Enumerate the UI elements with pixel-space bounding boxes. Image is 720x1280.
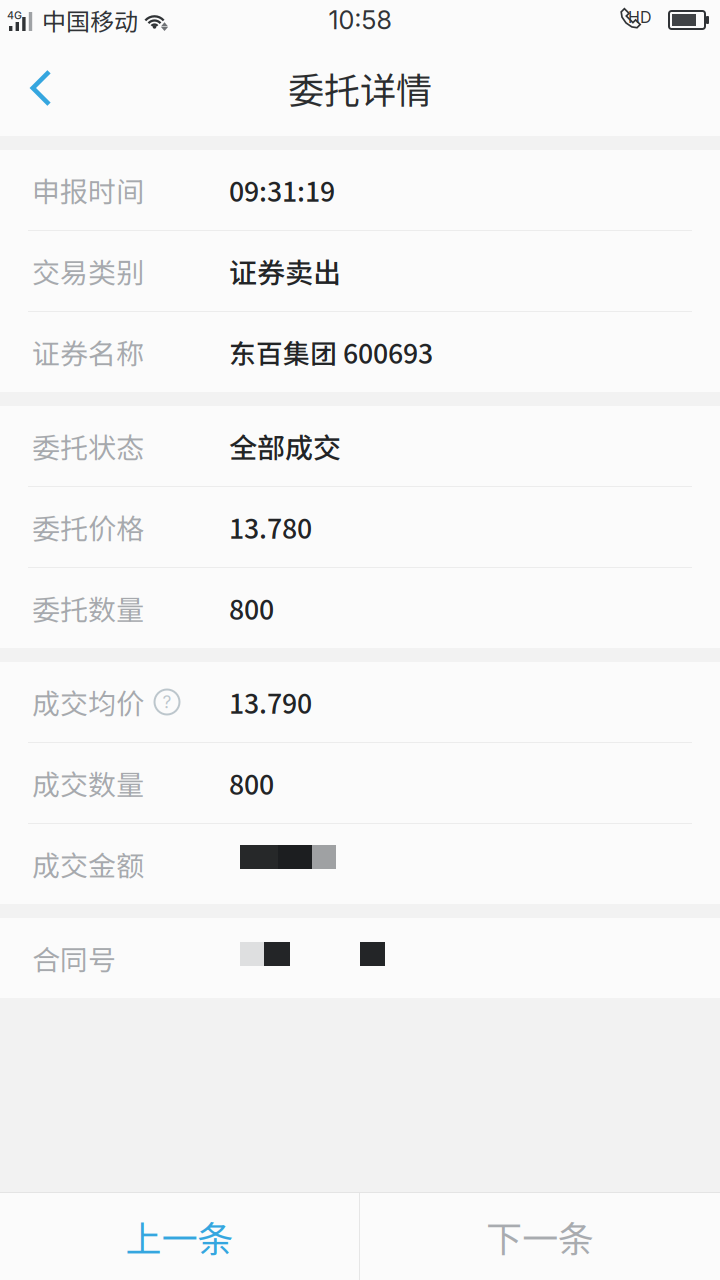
staticText: 委托价格: [32, 507, 144, 547]
button[interactable]: 下一条: [360, 1193, 720, 1280]
staticText: 成交均价: [32, 682, 144, 722]
staticText: 4G: [7, 9, 22, 22]
staticText: 交易类别: [32, 251, 144, 291]
staticText: 13.790: [229, 683, 312, 721]
staticText: 委托状态: [32, 426, 144, 466]
staticText: 证券名称: [32, 332, 144, 372]
staticText: 中国移动: [42, 3, 138, 37]
staticText: 10:58: [328, 5, 391, 35]
staticText: 上一条: [125, 1210, 233, 1262]
button[interactable]: 上一条: [0, 1193, 359, 1280]
staticText: 证券卖出: [229, 251, 341, 291]
staticText: 800: [229, 764, 274, 802]
staticText: 东百集团 600693: [229, 333, 433, 371]
staticText: 800: [229, 589, 274, 627]
staticText: 合同号: [32, 938, 116, 978]
staticText: 成交金额: [32, 844, 144, 884]
staticText: 委托详情: [288, 62, 432, 114]
staticText: 13.780: [229, 508, 312, 546]
staticText: 申报时间: [32, 170, 144, 210]
staticText: 全部成交: [229, 426, 341, 466]
staticText: 委托数量: [32, 588, 144, 628]
button[interactable]: 返回: [0, 40, 82, 136]
staticText: ?: [162, 691, 171, 712]
staticText: 09:31:19: [229, 171, 335, 209]
staticText: 成交数量: [32, 763, 144, 803]
staticText: 下一条: [486, 1210, 594, 1262]
staticText: HD: [628, 7, 652, 27]
